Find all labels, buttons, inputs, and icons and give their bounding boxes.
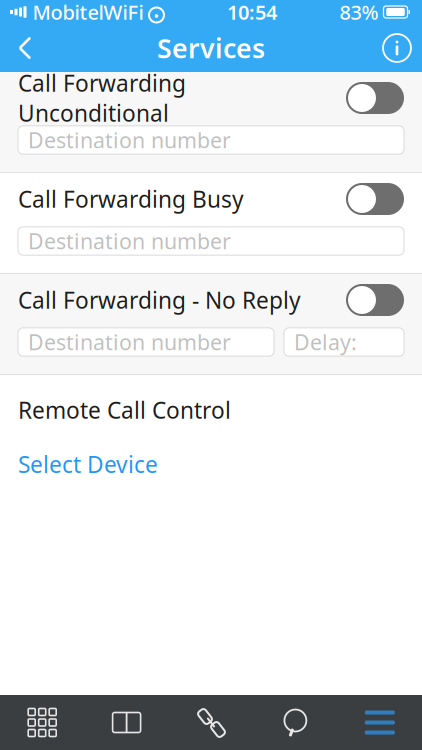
staticText: Call Forwarding Unconditional: [18, 68, 186, 128]
button[interactable]: Contacts: [84, 695, 169, 750]
staticText: MobitelWiFi: [32, 0, 143, 25]
button[interactable]: Calls: [169, 695, 253, 750]
staticText: Call Forwarding Busy: [18, 184, 244, 214]
staticText: Select Device: [18, 449, 158, 479]
button[interactable]: Call Forwarding - No Reply toggle: [346, 284, 404, 316]
button[interactable]: Keypad: [0, 695, 84, 750]
staticText: 10:54: [227, 0, 277, 25]
button[interactable]: Back: [0, 24, 50, 72]
button[interactable]: Select Device: [18, 425, 404, 489]
button[interactable]: Call Forwarding Busy toggle: [346, 183, 404, 215]
button[interactable]: Menu: [338, 695, 422, 750]
staticText: Remote Call Control: [18, 395, 231, 425]
staticText: Destination number: [28, 227, 231, 255]
button[interactable]: Information: [372, 24, 422, 72]
staticText: Destination number: [28, 126, 231, 154]
button[interactable]: Messages: [253, 695, 338, 750]
staticText: Delay:: [294, 328, 357, 356]
staticText: Destination number: [28, 328, 231, 356]
staticText: 83%: [339, 0, 378, 25]
staticText: Services: [157, 30, 265, 66]
button[interactable]: Call Forwarding Unconditional toggle: [346, 82, 404, 114]
staticText: Call Forwarding - No Reply: [18, 285, 301, 315]
